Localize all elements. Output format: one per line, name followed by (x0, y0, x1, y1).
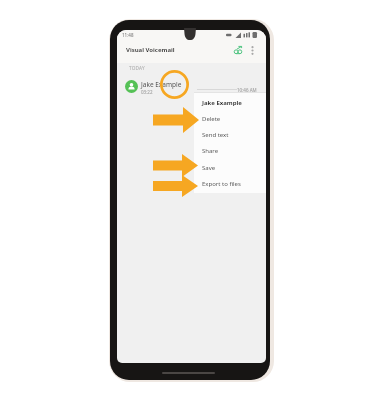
button[interactable]: Jake Example (194, 95, 266, 111)
staticText: Jake Example (141, 80, 182, 89)
staticText: Delete (202, 115, 221, 123)
staticText: 10:46 AM (237, 87, 257, 93)
button[interactable]: Export to files (194, 176, 266, 192)
button[interactable]: Save (194, 160, 266, 176)
staticText: TODAY (129, 65, 145, 71)
button[interactable]: More options (245, 43, 259, 57)
staticText: Export to files (202, 180, 241, 188)
staticText: Share (202, 147, 219, 155)
staticText: Visual Voicemail (126, 46, 175, 54)
button[interactable]: Delete (194, 111, 266, 127)
staticText: Save (202, 164, 216, 172)
staticText: Send text (202, 131, 229, 139)
button[interactable]: Jake Example (117, 73, 266, 97)
staticText: Jake Example (202, 99, 242, 107)
button[interactable]: Voicemail settings (231, 43, 245, 57)
button[interactable]: Share (194, 143, 266, 159)
staticText: 11:48 (122, 32, 134, 38)
staticText: 03:22 (141, 89, 153, 95)
button[interactable]: Send text (194, 127, 266, 143)
